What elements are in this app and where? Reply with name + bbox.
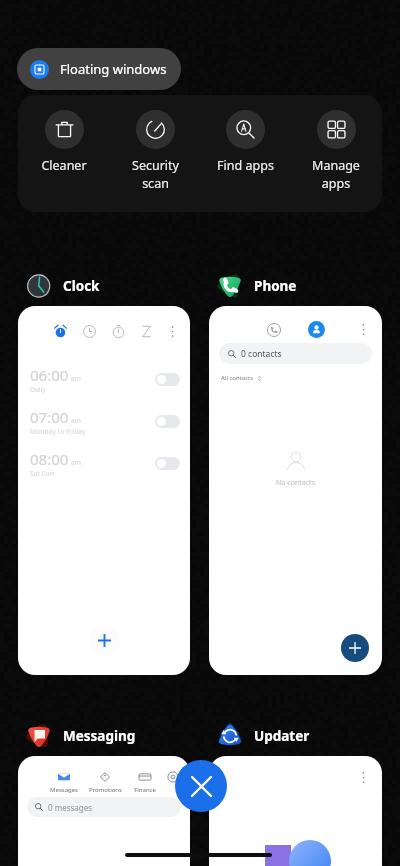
button[interactable]: Manage apps xyxy=(292,95,380,192)
button[interactable]: Clock xyxy=(24,270,100,302)
button[interactable]: Toggle alarm xyxy=(155,373,180,386)
staticText: All contacts xyxy=(221,374,254,382)
staticText: 08:00 xyxy=(30,449,69,469)
staticText: am xyxy=(71,458,81,467)
button[interactable]: 0 contacts xyxy=(219,343,372,364)
staticText: Clock xyxy=(63,277,100,295)
button[interactable]: Add alarm xyxy=(89,625,120,656)
button[interactable]: Updater xyxy=(215,720,310,752)
staticText: Cleaner xyxy=(41,157,87,174)
button[interactable]: 0 messages xyxy=(27,797,181,817)
button[interactable]: Contacts xyxy=(209,306,382,675)
staticText: Messages xyxy=(50,786,78,794)
button[interactable]: Add contact xyxy=(341,634,369,662)
staticText: Finance xyxy=(134,786,156,794)
button[interactable]: Find apps xyxy=(201,95,289,174)
button[interactable]: 06:00 xyxy=(18,306,190,675)
button[interactable]: Finance xyxy=(125,771,165,794)
staticText: Security scan xyxy=(132,157,179,192)
staticText: Messaging xyxy=(63,727,136,745)
staticText: Daily xyxy=(30,385,46,394)
button[interactable]: Messages xyxy=(44,771,84,794)
staticText: 0 messages xyxy=(48,802,93,813)
staticText: 06:00 xyxy=(30,365,69,385)
button[interactable]: Messages xyxy=(18,756,190,866)
staticText: Floating windows xyxy=(60,60,167,78)
button[interactable]: Contacts xyxy=(308,321,325,338)
staticText: Monday to Friday xyxy=(30,427,86,436)
button[interactable] xyxy=(153,771,190,794)
staticText: Find apps xyxy=(217,157,274,174)
button[interactable] xyxy=(209,756,382,866)
button[interactable]: Close all xyxy=(175,760,227,812)
button[interactable]: Phone xyxy=(215,270,297,302)
staticText: am xyxy=(71,374,81,383)
staticText: 0 contacts xyxy=(241,348,282,360)
staticText: Promotions xyxy=(89,786,122,794)
staticText: am xyxy=(71,416,81,425)
button[interactable]: Toggle alarm xyxy=(155,457,180,470)
button[interactable]: Floating windows xyxy=(17,48,181,90)
button[interactable]: Promotions xyxy=(85,771,125,794)
staticText: Manage apps xyxy=(312,157,360,192)
staticText: Updater xyxy=(254,727,310,745)
button[interactable]: All contacts xyxy=(221,374,262,382)
button[interactable]: Security scan xyxy=(111,95,199,192)
staticText: Phone xyxy=(254,277,297,295)
button[interactable]: Toggle alarm xyxy=(155,415,180,428)
button[interactable]: Messaging xyxy=(24,720,136,752)
staticText: Sat Sun xyxy=(30,469,54,478)
staticText: No contacts xyxy=(276,478,315,488)
button[interactable]: Cleaner xyxy=(20,95,108,174)
staticText: 07:00 xyxy=(30,407,69,427)
